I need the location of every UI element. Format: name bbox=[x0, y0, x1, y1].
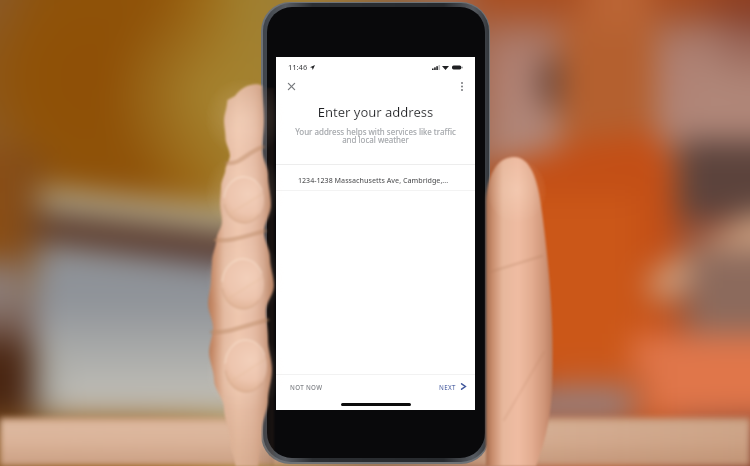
button[interactable]: NOT NOW bbox=[283, 377, 330, 396]
staticText: Enter your address bbox=[276, 103, 475, 121]
button[interactable]: NEXT bbox=[433, 377, 472, 396]
button[interactable]: Close bbox=[280, 75, 302, 97]
staticText: Your address helps with services like tr… bbox=[276, 126, 475, 145]
staticText: 11:46 bbox=[288, 62, 308, 72]
button[interactable]: 1234-1238 Massachusetts Ave, Cambridge,.… bbox=[276, 165, 475, 190]
button[interactable]: More options bbox=[451, 75, 472, 97]
staticText: NOT NOW bbox=[290, 383, 323, 391]
staticText: 1234-1238 Massachusetts Ave, Cambridge,.… bbox=[298, 175, 449, 185]
staticText: NEXT bbox=[439, 383, 456, 391]
